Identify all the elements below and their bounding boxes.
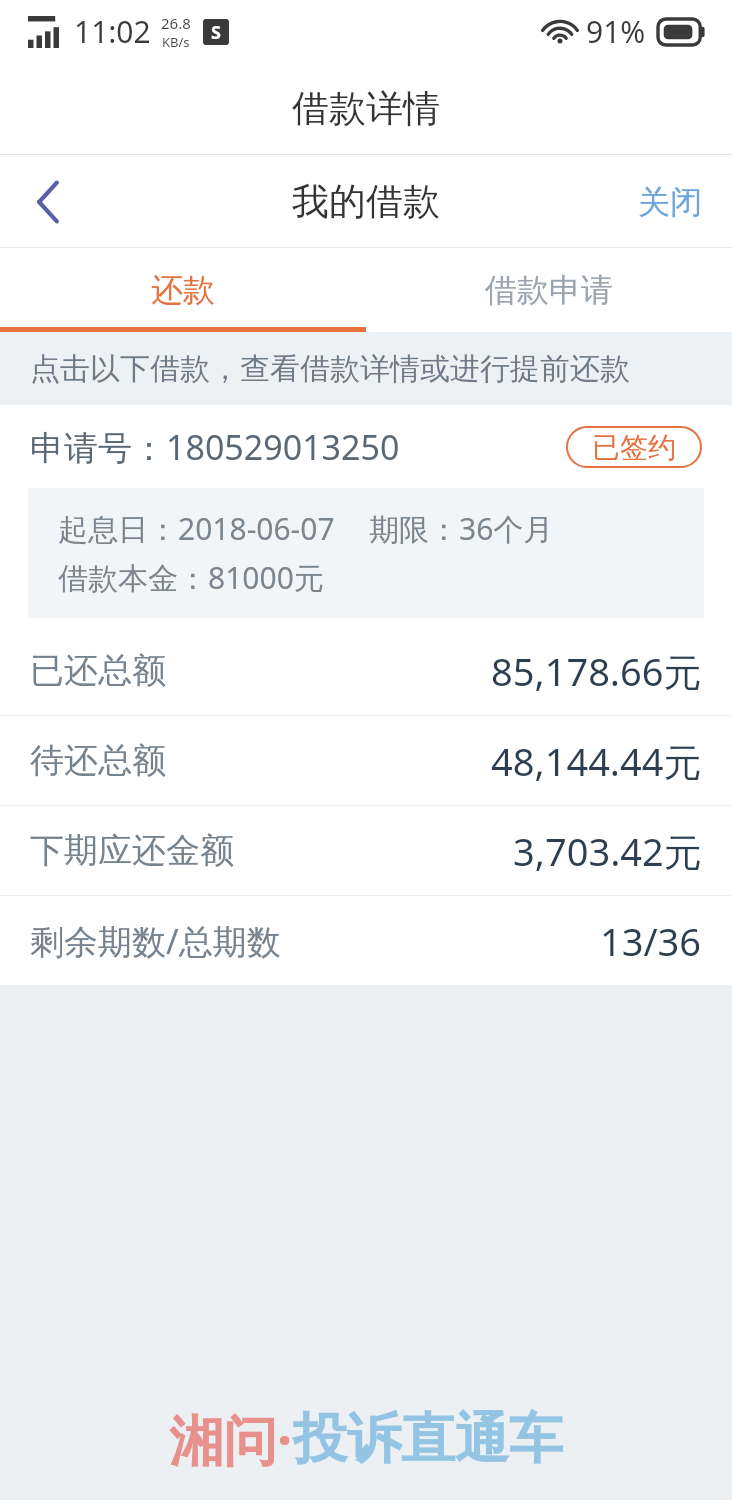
staticText: 已签约: [592, 430, 676, 465]
staticText: KB/s: [162, 33, 190, 51]
staticText: 关闭: [638, 182, 702, 222]
button[interactable]: 还款: [0, 248, 366, 332]
staticText: 11:02: [74, 11, 151, 52]
staticText: 还款: [151, 270, 215, 310]
button[interactable]: 关闭: [608, 155, 732, 248]
staticText: S: [211, 20, 221, 45]
staticText: 85,178.66元: [491, 645, 702, 697]
staticText: 点击以下借款，查看借款详情或进行提前还款: [30, 350, 630, 388]
staticText: 26.8: [161, 13, 191, 33]
staticText: 湘问·: [169, 1402, 293, 1476]
staticText: 剩余期数/总期数: [30, 918, 281, 964]
staticText: 3,703.42元: [513, 825, 702, 877]
button[interactable]: Back: [0, 155, 96, 248]
staticText: 我的借款: [292, 178, 440, 225]
staticText: 申请号：180529013250: [30, 424, 400, 470]
staticText: 借款详情: [292, 85, 440, 132]
staticText: 借款申请: [485, 270, 613, 310]
staticText: 期限：36个月: [369, 508, 554, 549]
staticText: 起息日：2018-06-07: [58, 508, 335, 549]
staticText: 已还总额: [30, 649, 166, 692]
staticText: 下期应还金额: [30, 829, 234, 872]
staticText: 13/36: [600, 915, 702, 967]
staticText: 91%: [586, 11, 646, 52]
staticText: 48,144.44元: [491, 735, 702, 787]
staticText: 投诉直通车: [293, 1405, 563, 1473]
staticText: 借款本金：81000元: [58, 557, 324, 598]
staticText: 待还总额: [30, 739, 166, 782]
button[interactable]: 申请号：180529013250: [0, 405, 732, 985]
button[interactable]: 借款申请: [366, 248, 732, 332]
